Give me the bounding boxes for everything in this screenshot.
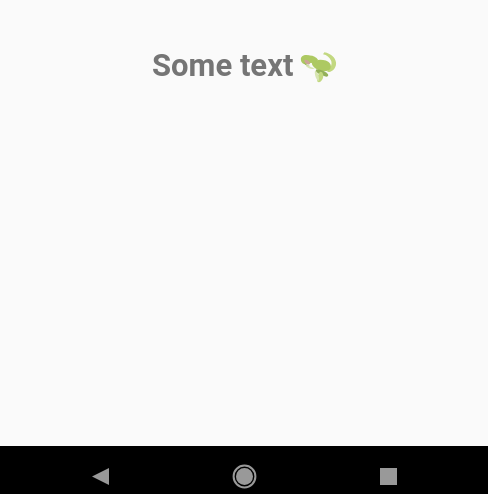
button[interactable]: Home (212, 455, 276, 494)
button[interactable]: Back (68, 455, 132, 494)
staticText: Some text (152, 47, 294, 83)
button[interactable]: Recent apps (356, 455, 420, 494)
